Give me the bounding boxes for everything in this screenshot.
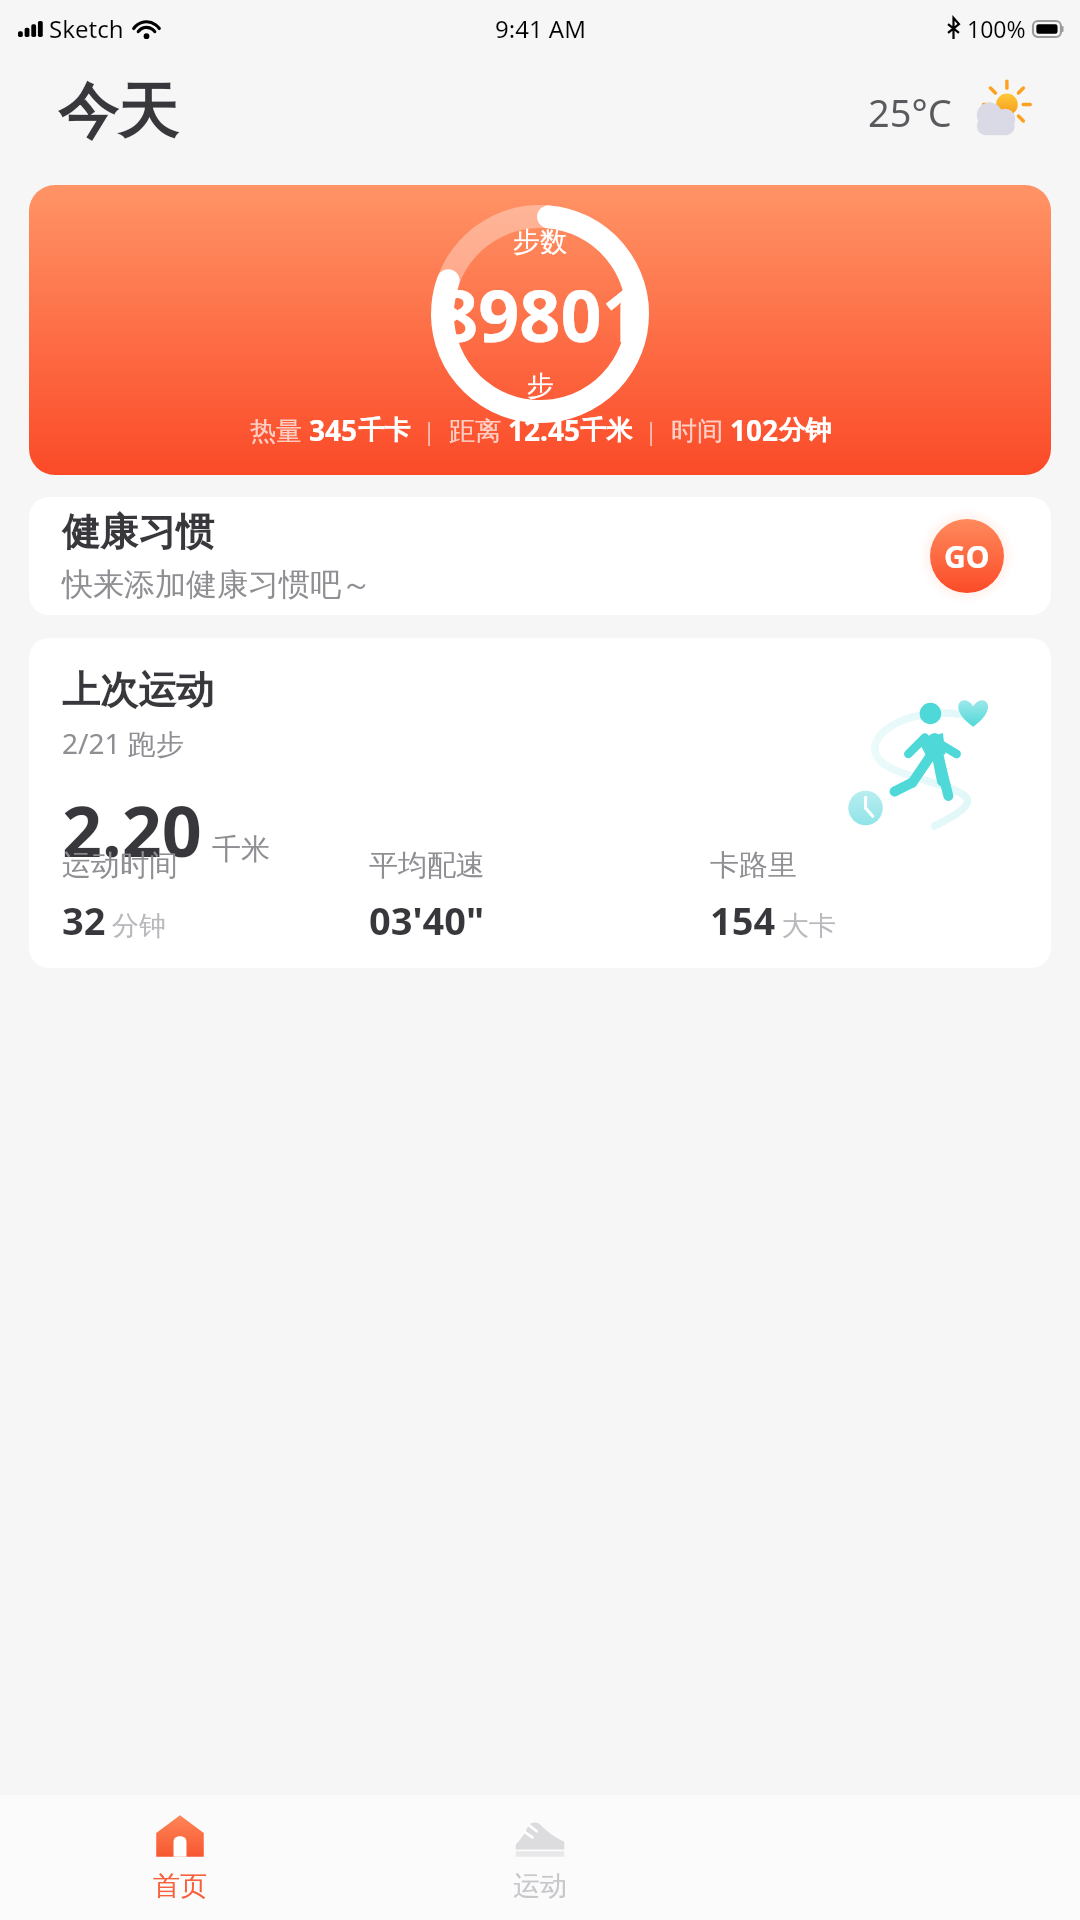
staticText: 345 [309,411,358,449]
staticText: 步 [527,369,554,403]
staticText: 9:41 AM [495,12,586,45]
staticText: 健康习惯 [62,508,214,556]
button[interactable]: 运动 [360,1795,720,1920]
staticText: 平均配速 [369,847,485,884]
staticText: 154 [710,894,776,946]
staticText: 步数 [513,225,567,259]
staticText: 分钟 [112,909,166,943]
button[interactable]: Weather 25 degrees [868,85,1028,139]
button[interactable]: GO add habit [919,508,1015,604]
button[interactable]: 健康习惯 [29,497,1051,615]
button[interactable]: 首页 [0,1795,360,1920]
staticText: 分钟 [779,414,831,447]
button[interactable]: 上次运动 [29,638,1051,968]
staticText: 千卡 [358,414,410,447]
button[interactable]: 步数 [29,185,1051,475]
staticText: 2/21 跑步 [62,724,184,762]
staticText: 今天 [58,74,178,150]
staticText: | [632,414,671,447]
staticText: GO [944,536,990,577]
staticText: Sketch [49,12,124,45]
staticText: 大卡 [782,909,836,943]
staticText: 上次运动 [62,666,214,714]
staticText: 03'40" [369,894,485,946]
staticText: 运动 [513,1869,567,1903]
staticText: 距离 [449,412,508,448]
staticText: 25°C [868,86,952,138]
staticText: 12.45 [508,411,580,449]
staticText: 32 [62,894,106,946]
staticText: 热量 [250,412,309,448]
staticText: 89801 [437,265,643,363]
staticText: 卡路里 [710,847,797,884]
staticText: | [410,414,449,447]
staticText: 2.20 [62,782,202,877]
staticText: 首页 [153,1869,207,1903]
staticText: 运动时间 [62,847,178,884]
staticText: 千米 [580,414,632,447]
staticText: 快来添加健康习惯吧～ [62,565,372,604]
staticText: 102 [730,411,779,449]
staticText: 时间 [671,412,730,448]
staticText: 100% [967,13,1026,44]
staticText: 千米 [212,831,270,868]
